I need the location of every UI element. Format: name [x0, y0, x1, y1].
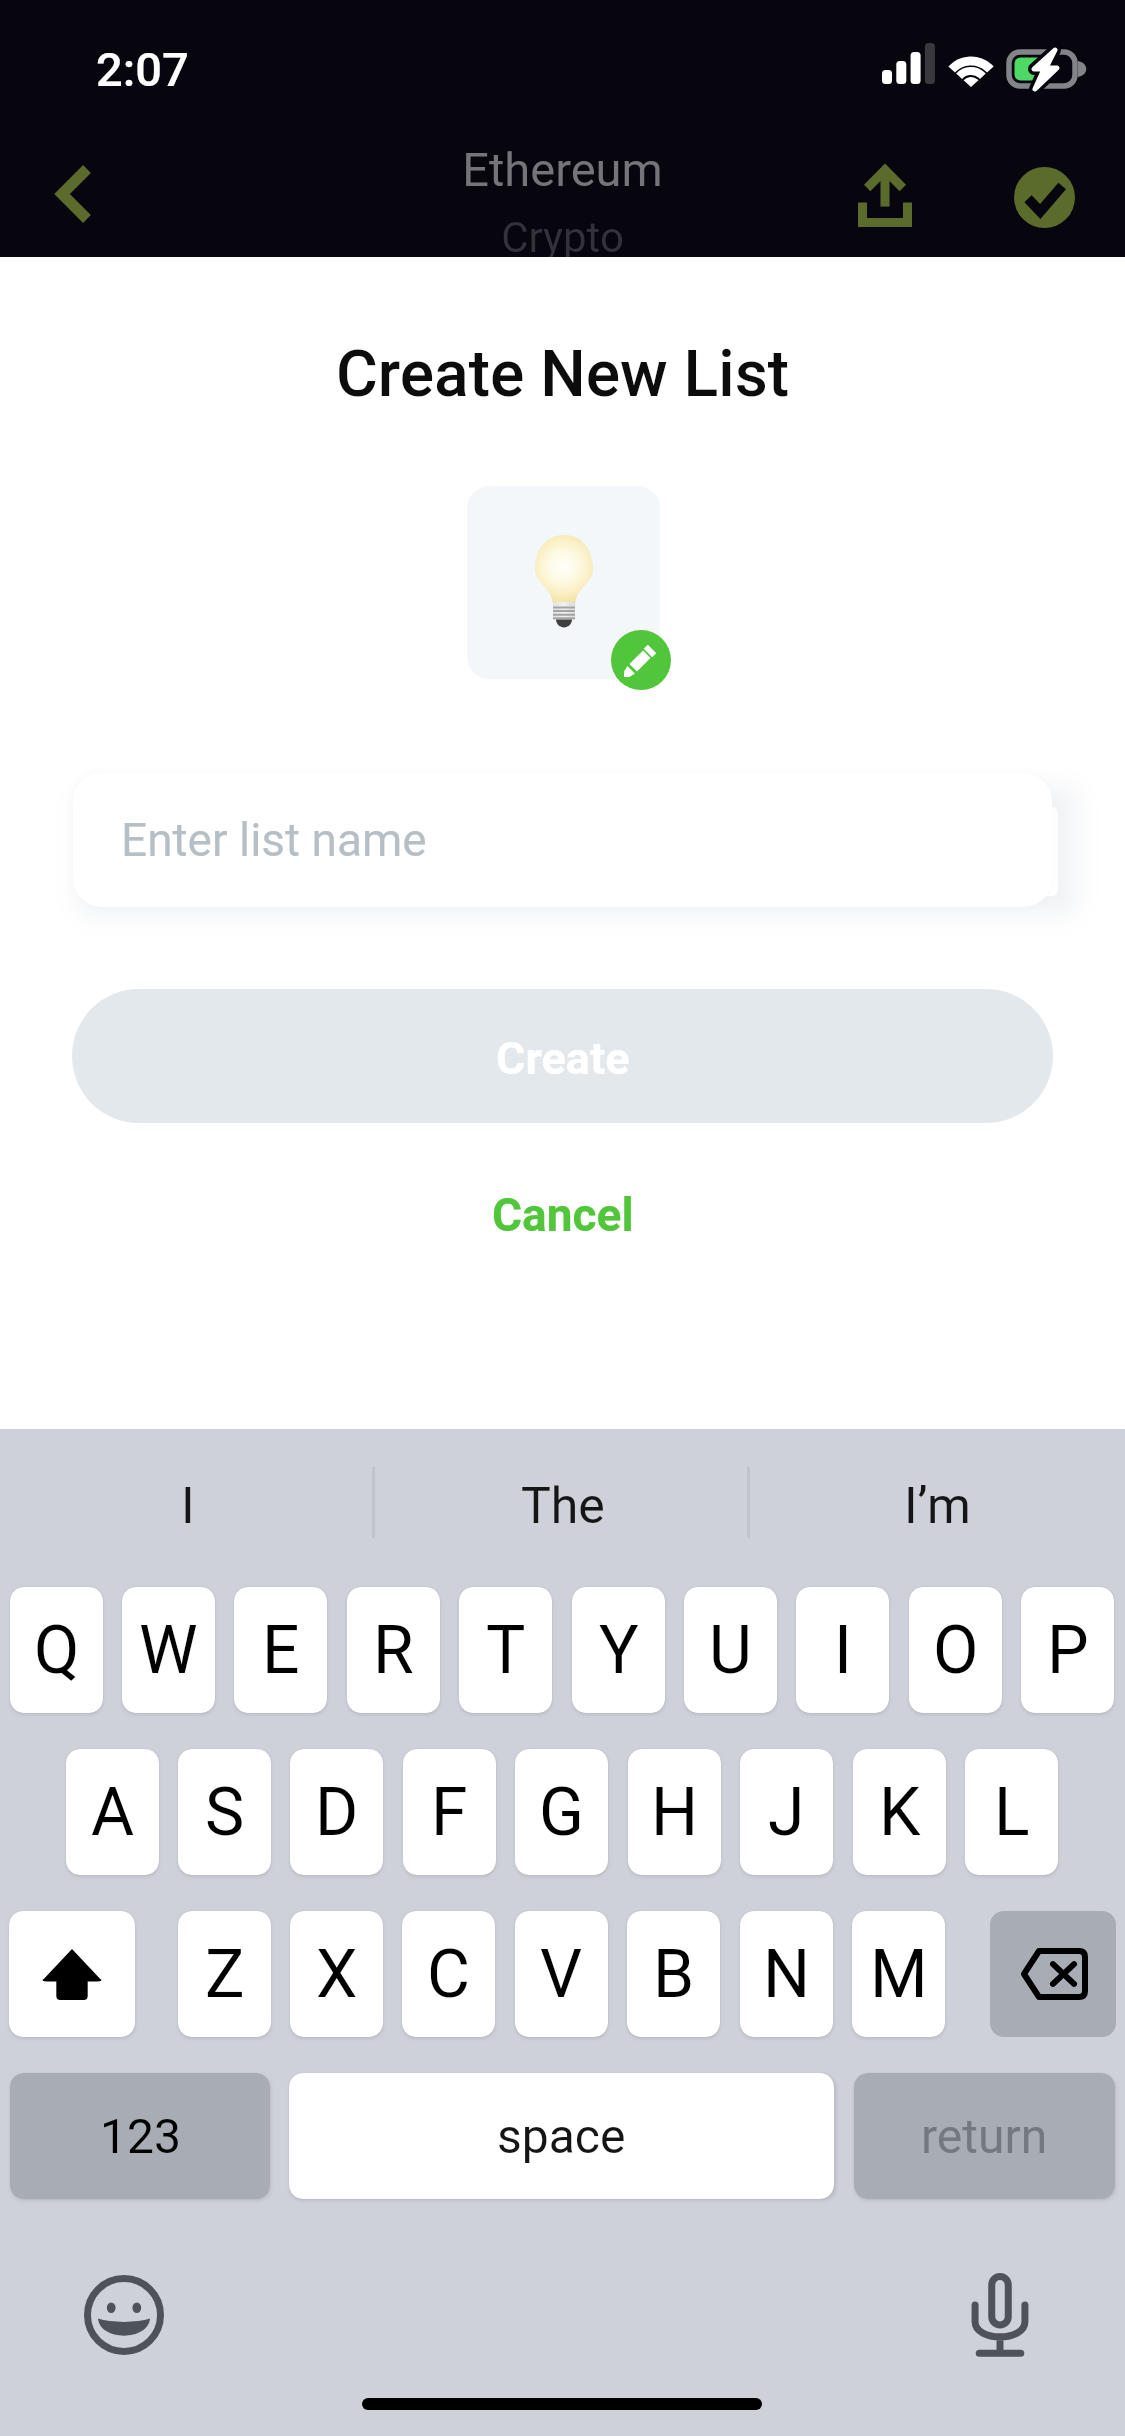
- button[interactable]: J: [740, 1749, 833, 1875]
- button[interactable]: Emoji keyboard: [79, 2270, 169, 2360]
- button[interactable]: Enter list name: [73, 773, 1052, 907]
- button[interactable]: O: [909, 1587, 1002, 1713]
- staticText: G: [539, 1774, 584, 1851]
- button[interactable]: V: [515, 1911, 608, 2037]
- button[interactable]: return: [854, 2073, 1115, 2199]
- staticText: space: [497, 2108, 626, 2164]
- staticText: H: [651, 1774, 699, 1851]
- staticText: I: [834, 1612, 852, 1689]
- staticText: U: [709, 1612, 752, 1689]
- staticText: P: [1047, 1612, 1089, 1689]
- button[interactable]: Edit icon: [611, 630, 671, 690]
- staticText: A: [91, 1774, 135, 1851]
- button[interactable]: Q: [10, 1587, 103, 1713]
- button[interactable]: 123: [10, 2073, 270, 2199]
- button[interactable]: P: [1021, 1587, 1114, 1713]
- staticText: F: [431, 1774, 468, 1851]
- button[interactable]: Shift: [9, 1911, 135, 2037]
- button[interactable]: Choose icon: [467, 486, 660, 679]
- button[interactable]: Share: [830, 142, 940, 252]
- staticText: N: [763, 1936, 811, 2013]
- staticText: Z: [205, 1936, 245, 2013]
- button[interactable]: L: [965, 1749, 1058, 1875]
- button[interactable]: N: [740, 1911, 833, 2037]
- button[interactable]: G: [515, 1749, 608, 1875]
- staticText: C: [427, 1936, 470, 2013]
- button[interactable]: Backspace: [990, 1911, 1116, 2037]
- staticText: S: [205, 1774, 245, 1851]
- staticText: 2:07: [96, 42, 189, 97]
- button[interactable]: X: [290, 1911, 383, 2037]
- button[interactable]: I’m: [750, 1429, 1125, 1587]
- staticText: V: [540, 1936, 583, 2013]
- button[interactable]: The: [375, 1429, 750, 1587]
- button[interactable]: H: [628, 1749, 721, 1875]
- staticText: Cancel: [492, 1188, 634, 1242]
- staticText: Create New List: [0, 337, 1125, 412]
- staticText: Crypto: [0, 213, 1125, 257]
- button[interactable]: R: [347, 1587, 440, 1713]
- staticText: Ethereum: [0, 142, 1125, 197]
- button[interactable]: I: [0, 1429, 375, 1587]
- staticText: X: [316, 1936, 358, 2013]
- button[interactable]: Back: [26, 146, 122, 242]
- staticText: W: [139, 1612, 198, 1689]
- staticText: I’m: [904, 1477, 971, 1536]
- staticText: J: [768, 1774, 805, 1851]
- button[interactable]: Y: [572, 1587, 665, 1713]
- button[interactable]: M: [852, 1911, 945, 2037]
- staticText: I: [181, 1477, 195, 1536]
- staticText: T: [486, 1612, 526, 1689]
- staticText: L: [994, 1774, 1030, 1851]
- button[interactable]: I: [796, 1587, 889, 1713]
- staticText: E: [262, 1612, 300, 1689]
- staticText: Enter list name: [121, 813, 427, 867]
- staticText: R: [373, 1612, 414, 1689]
- button[interactable]: W: [122, 1587, 215, 1713]
- staticText: The: [521, 1477, 605, 1536]
- button[interactable]: U: [684, 1587, 777, 1713]
- staticText: B: [653, 1936, 695, 2013]
- button[interactable]: S: [178, 1749, 271, 1875]
- button[interactable]: D: [290, 1749, 383, 1875]
- button[interactable]: C: [402, 1911, 495, 2037]
- button[interactable]: K: [853, 1749, 946, 1875]
- button[interactable]: space: [289, 2073, 834, 2199]
- button[interactable]: Confirm: [994, 147, 1094, 247]
- staticText: Q: [34, 1612, 80, 1689]
- button[interactable]: B: [627, 1911, 720, 2037]
- button[interactable]: Cancel: [432, 1168, 694, 1262]
- button[interactable]: Dictation: [955, 2270, 1045, 2360]
- staticText: Create: [496, 1032, 630, 1085]
- staticText: D: [315, 1774, 359, 1851]
- button[interactable]: Z: [178, 1911, 271, 2037]
- staticText: return: [921, 2108, 1048, 2164]
- button[interactable]: T: [459, 1587, 552, 1713]
- button[interactable]: F: [403, 1749, 496, 1875]
- button[interactable]: A: [66, 1749, 159, 1875]
- button[interactable]: E: [234, 1587, 327, 1713]
- staticText: M: [870, 1936, 928, 2013]
- staticText: Y: [599, 1612, 639, 1689]
- staticText: O: [933, 1612, 979, 1689]
- staticText: 123: [100, 2108, 181, 2164]
- button[interactable]: Create: [72, 989, 1053, 1123]
- staticText: K: [879, 1774, 921, 1851]
